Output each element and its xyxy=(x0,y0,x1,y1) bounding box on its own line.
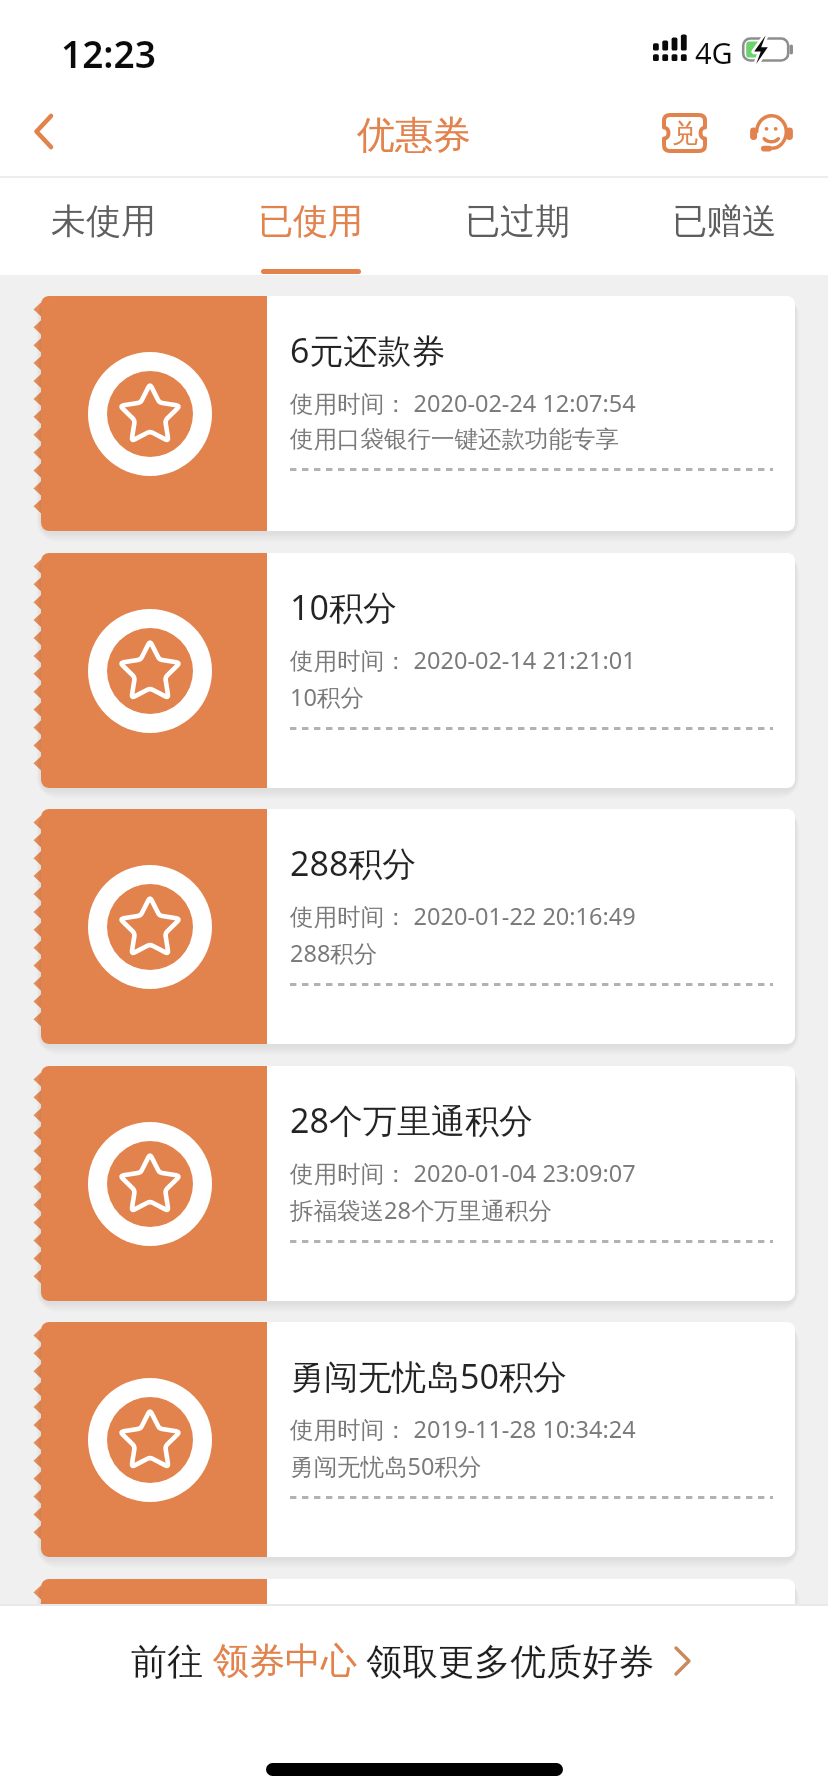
staticText: 勇闯无忧岛50积分 xyxy=(290,1353,567,1399)
staticText: 勇闯无忧岛50积分 xyxy=(290,1450,482,1482)
button[interactable]: 勇闯无忧岛50积分 xyxy=(33,1322,795,1557)
staticText: 使用时间： 2020-01-22 20:16:49 xyxy=(290,900,636,932)
staticText: 使用时间： 2020-02-14 21:21:01 xyxy=(290,644,636,676)
button[interactable]: Exchange coupon xyxy=(646,95,722,171)
staticText: 兑 xyxy=(672,117,698,150)
staticText: 使用时间： 2020-01-04 23:09:07 xyxy=(290,1157,636,1189)
staticText: 使用时间： 2019-11-28 10:34:24 xyxy=(290,1413,636,1445)
staticText: 使用口袋银行一键还款功能专享 xyxy=(290,424,619,454)
staticText: 288积分 xyxy=(290,937,378,969)
button[interactable]: 8元还款券 xyxy=(33,1579,795,1604)
button[interactable]: 6元还款券 xyxy=(33,296,795,531)
staticText: 领取更多优质好券 xyxy=(357,1636,655,1685)
staticText: 前往 xyxy=(131,1636,213,1685)
button[interactable]: 前往 xyxy=(0,1606,828,1714)
staticText: 已使用 xyxy=(258,199,363,243)
button[interactable]: 10积分 xyxy=(33,553,795,788)
staticText: 12:23 xyxy=(61,28,156,78)
staticText: 拆福袋送28个万里通积分 xyxy=(290,1194,552,1226)
staticText: 10积分 xyxy=(290,584,397,630)
staticText: 288积分 xyxy=(290,840,417,886)
staticText: 未使用 xyxy=(51,199,156,243)
staticText: 已赠送 xyxy=(672,199,777,243)
staticText: 4G xyxy=(695,33,733,72)
staticText: 28个万里通积分 xyxy=(290,1097,533,1143)
button[interactable]: Customer service xyxy=(733,95,809,171)
button[interactable]: 288积分 xyxy=(33,809,795,1044)
staticText: 6元还款券 xyxy=(290,327,446,373)
button[interactable]: 已过期 xyxy=(414,176,621,275)
staticText: 优惠券 xyxy=(357,111,471,159)
staticText: 10积分 xyxy=(290,681,364,713)
staticText: 已过期 xyxy=(465,199,570,243)
button[interactable]: 已赠送 xyxy=(621,176,828,275)
button[interactable]: 已使用 xyxy=(207,176,414,275)
button[interactable]: 28个万里通积分 xyxy=(33,1066,795,1301)
staticText: 使用时间： 2020-02-24 12:07:54 xyxy=(290,387,636,419)
button[interactable]: 未使用 xyxy=(0,176,207,275)
staticText: 领券中心 xyxy=(213,1638,357,1683)
button[interactable]: Back xyxy=(0,96,86,176)
